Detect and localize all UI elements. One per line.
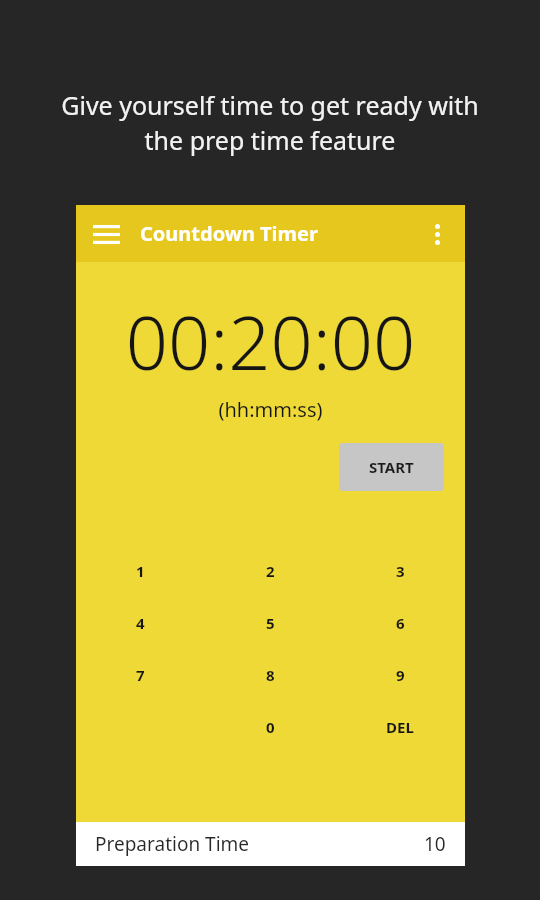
staticText: (hh:mm:ss) [76, 396, 465, 423]
staticText: 1 [136, 561, 145, 581]
staticText: 7 [136, 665, 145, 685]
button[interactable]: 4 [76, 597, 205, 649]
button[interactable]: 3 [335, 545, 465, 597]
button[interactable]: More options [415, 212, 459, 256]
staticText: 3 [396, 561, 405, 581]
button[interactable]: 0 [205, 701, 335, 753]
button[interactable]: 7 [76, 649, 205, 701]
button[interactable]: START [339, 443, 444, 491]
staticText: Give yourself time to get ready with the… [28, 88, 512, 158]
staticText: 10 [424, 831, 446, 857]
button[interactable]: 1 [76, 545, 205, 597]
staticText: 4 [136, 613, 145, 633]
staticText: 00:20:00 [76, 291, 465, 392]
button[interactable]: 9 [335, 649, 465, 701]
button[interactable]: DEL [335, 701, 465, 753]
button[interactable]: Menu [82, 210, 130, 258]
button[interactable]: 8 [205, 649, 335, 701]
staticText: START [369, 457, 414, 477]
staticText: Countdown Timer [140, 220, 318, 247]
button[interactable]: Preparation Time [76, 822, 465, 866]
staticText: DEL [386, 717, 414, 737]
button[interactable]: 5 [205, 597, 335, 649]
staticText: 0 [266, 717, 275, 737]
staticText: 8 [266, 665, 275, 685]
button[interactable]: 6 [335, 597, 465, 649]
staticText: 5 [266, 613, 275, 633]
staticText: Preparation Time [95, 831, 250, 857]
button[interactable]: 2 [205, 545, 335, 597]
staticText: 2 [266, 561, 275, 581]
staticText: 6 [396, 613, 405, 633]
staticText: 9 [396, 665, 405, 685]
